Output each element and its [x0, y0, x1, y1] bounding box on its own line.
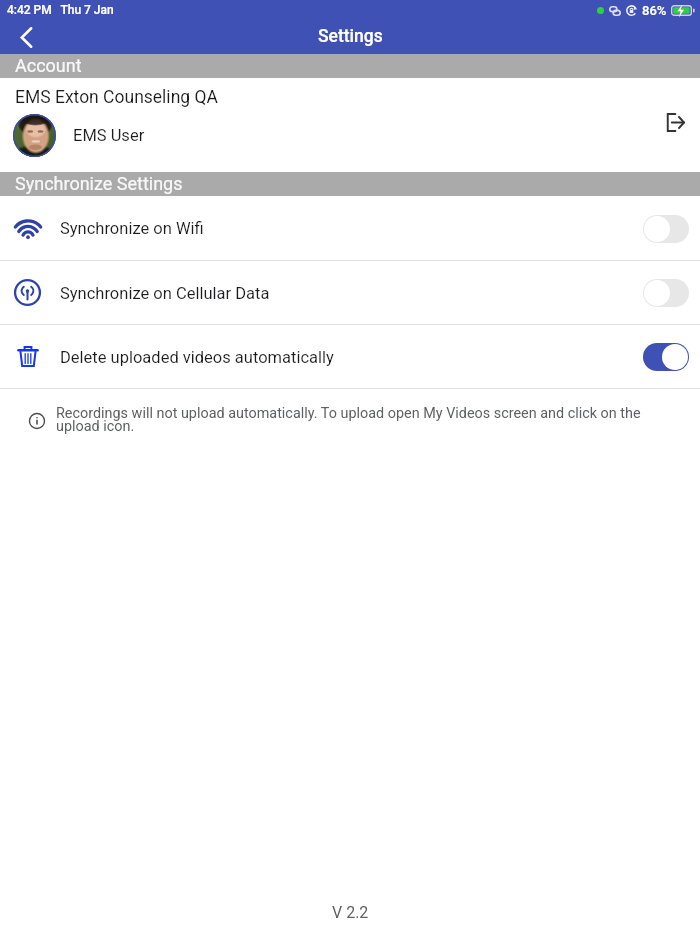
- staticText: Account: [15, 55, 82, 76]
- button[interactable]: Off: [643, 279, 689, 307]
- button[interactable]: Synchronize on Wifi: [0, 196, 700, 261]
- staticText: EMS Exton Counseling QA: [15, 87, 218, 108]
- button[interactable]: Back: [0, 20, 50, 54]
- button[interactable]: Delete uploaded videos automatically: [0, 325, 700, 389]
- staticText: 86%: [642, 3, 667, 18]
- button[interactable]: On: [643, 343, 689, 371]
- staticText: Synchronize Settings: [15, 173, 183, 194]
- button[interactable]: Synchronize on Cellular Data: [0, 261, 700, 325]
- button[interactable]: Off: [643, 215, 689, 243]
- staticText: Settings: [318, 26, 383, 47]
- staticText: EMS User: [73, 126, 145, 145]
- staticText: Synchronize on Cellular Data: [60, 284, 270, 303]
- staticText: 4:42 PM Thu 7 Jan: [7, 3, 114, 17]
- staticText: Synchronize on Wifi: [60, 219, 204, 238]
- staticText: Recordings will not upload automatically…: [56, 405, 642, 434]
- staticText: V 2.2: [332, 903, 369, 922]
- button[interactable]: Log out: [646, 111, 698, 159]
- staticText: Delete uploaded videos automatically: [60, 348, 334, 367]
